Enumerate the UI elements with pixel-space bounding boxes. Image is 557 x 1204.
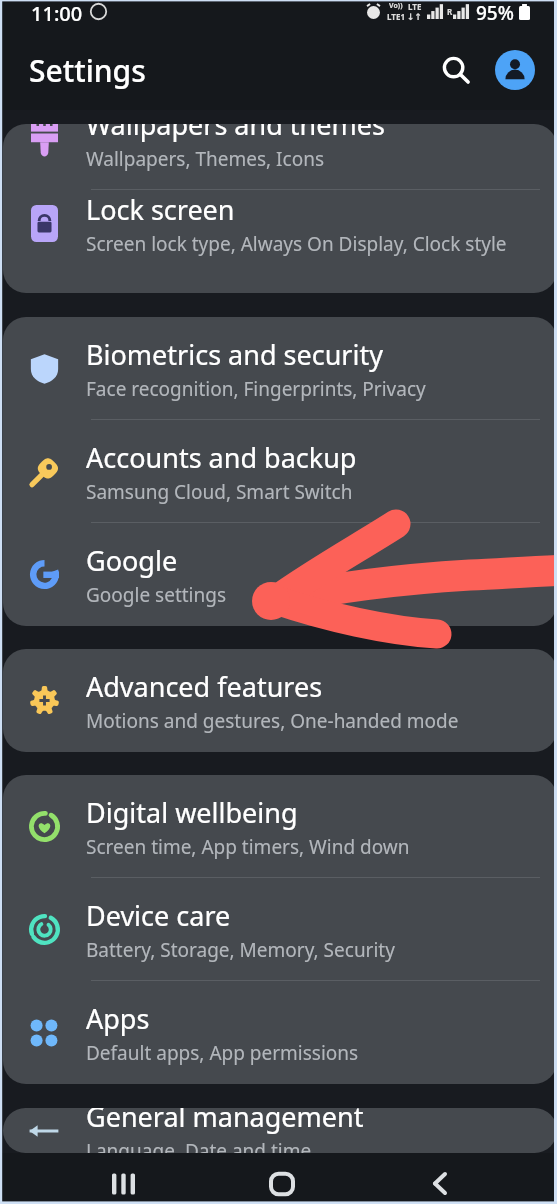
- button[interactable]: Advanced features: [3, 649, 557, 752]
- staticText: Accounts and backup: [86, 439, 357, 476]
- button[interactable]: Search: [434, 48, 478, 92]
- button[interactable]: General management: [3, 1108, 557, 1153]
- staticText: Lock screen: [86, 191, 235, 228]
- button[interactable]: Home: [252, 1163, 312, 1204]
- button[interactable]: Biometrics and security: [3, 317, 557, 420]
- staticText: Wallpapers, Themes, Icons: [86, 146, 325, 172]
- staticText: 95%: [476, 0, 514, 23]
- staticText: Google: [86, 542, 178, 579]
- staticText: Samsung Cloud, Smart Switch: [86, 479, 353, 505]
- button[interactable]: Device care: [3, 878, 557, 981]
- button[interactable]: Back: [410, 1163, 470, 1204]
- staticText: LTE1: [387, 11, 405, 22]
- button[interactable]: Recent apps: [93, 1163, 153, 1204]
- staticText: Apps: [86, 1000, 150, 1037]
- staticText: Battery, Storage, Memory, Security: [86, 937, 395, 963]
- staticText: Default apps, App permissions: [86, 1040, 359, 1066]
- staticText: Settings: [29, 50, 146, 91]
- button[interactable]: Digital wellbeing: [3, 775, 557, 878]
- staticText: Digital wellbeing: [86, 794, 298, 831]
- staticText: R: [447, 6, 453, 17]
- staticText: Language, Date and time: [86, 1138, 312, 1153]
- button[interactable]: Account: [495, 50, 535, 90]
- staticText: 11:00: [31, 0, 83, 23]
- button[interactable]: Apps: [3, 981, 557, 1084]
- button[interactable]: Wallpapers and themes: [3, 124, 557, 190]
- staticText: Advanced features: [86, 668, 323, 705]
- staticText: LTE: [408, 1, 422, 12]
- staticText: Screen time, App timers, Wind down: [86, 834, 410, 860]
- staticText: Device care: [86, 897, 231, 934]
- button[interactable]: Lock screen: [3, 172, 557, 275]
- button[interactable]: Google: [3, 523, 557, 626]
- staticText: Motions and gestures, One-handed mode: [86, 708, 459, 734]
- staticText: General management: [86, 1108, 364, 1135]
- staticText: Vo)): [389, 1, 403, 11]
- staticText: Wallpapers and themes: [86, 124, 385, 143]
- staticText: ↓↑: [407, 12, 423, 22]
- staticText: Screen lock type, Always On Display, Clo…: [86, 231, 507, 257]
- staticText: Face recognition, Fingerprints, Privacy: [86, 376, 426, 402]
- staticText: Biometrics and security: [86, 336, 383, 373]
- button[interactable]: Accounts and backup: [3, 420, 557, 523]
- staticText: Google settings: [86, 582, 227, 608]
